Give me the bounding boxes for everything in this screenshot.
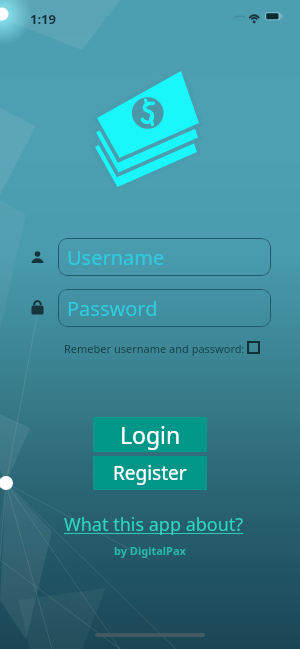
button[interactable]: Login	[93, 417, 207, 452]
button[interactable]: What this app about?	[64, 512, 244, 537]
staticText: Login	[120, 419, 181, 450]
button[interactable]: Register	[93, 456, 207, 490]
staticText: by DigitalPax	[114, 543, 186, 558]
staticText: Register	[113, 460, 187, 486]
staticText: Username	[67, 244, 165, 271]
staticText: Password	[67, 295, 158, 322]
button[interactable]: Password	[58, 289, 271, 327]
staticText: Remeber username and password:	[64, 341, 245, 356]
button[interactable]: Remember username and password	[247, 341, 260, 354]
staticText: 1:19	[30, 10, 56, 28]
button[interactable]: Username	[58, 238, 271, 276]
